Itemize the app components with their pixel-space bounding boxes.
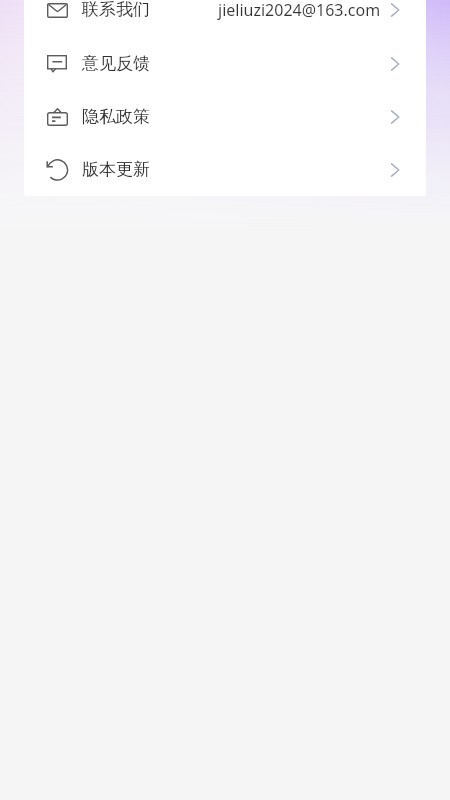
other: Contact us [47, 3, 68, 18]
other: Open [390, 109, 400, 125]
button[interactable]: Privacy policy [24, 90, 426, 143]
other: Open [390, 56, 400, 72]
staticText: 隐私政策 [82, 106, 150, 127]
other: Open [390, 162, 400, 178]
staticText: jieliuzi2024@163.com [218, 0, 381, 21]
button[interactable]: Feedback [24, 37, 426, 90]
other: Open [390, 2, 400, 18]
other: Privacy policy [47, 108, 68, 126]
staticText: 意见反馈 [82, 53, 150, 74]
button[interactable]: Check for updates [24, 143, 426, 196]
other: Check for updates [47, 160, 68, 181]
button[interactable]: Contact us [24, 0, 426, 37]
staticText: 联系我们 [82, 0, 150, 20]
other: Feedback [47, 55, 67, 73]
staticText: 版本更新 [82, 159, 150, 180]
